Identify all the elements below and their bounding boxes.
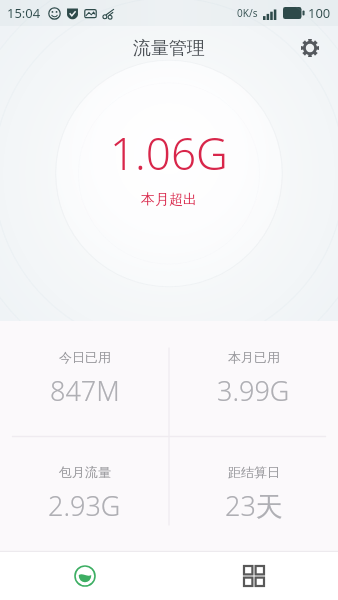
staticText: 100 [308,4,331,22]
staticText: 距结算日 [228,464,280,480]
staticText: 流量管理 [56,37,282,60]
staticText: 今日已用 [59,349,111,365]
button[interactable]: Settings [282,26,338,70]
button[interactable]: 距结算日 [169,436,338,552]
staticText: 包月流量 [59,464,111,480]
button[interactable]: 包月流量 [0,436,169,552]
button[interactable]: 今日已用 [0,321,169,436]
staticText: 23天 [225,487,283,524]
staticText: 本月已用 [228,349,280,365]
button[interactable]: Apps [169,552,338,600]
staticText: 1.06G [110,123,228,183]
button[interactable]: Data usage [0,552,169,600]
button[interactable]: 本月已用 [169,321,338,436]
staticText: 847M [50,372,120,409]
staticText: 2.93G [48,487,121,524]
staticText: 0K/s [237,6,258,20]
staticText: 本月超出 [141,191,197,209]
staticText: 3.99G [217,372,290,409]
staticText: 15:04 [7,4,41,22]
